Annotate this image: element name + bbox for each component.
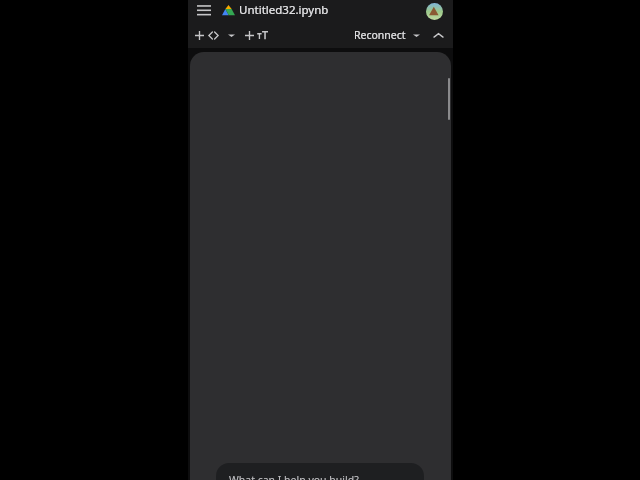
staticText: Reconnect	[354, 28, 406, 42]
button[interactable]: Expand	[430, 27, 446, 43]
button[interactable]: What can I help you build?	[216, 463, 424, 480]
button[interactable]: Add text cell	[243, 27, 270, 44]
button[interactable]: Account	[426, 3, 443, 20]
staticText: Untitled32.ipynb	[239, 2, 329, 18]
button[interactable]: Menu	[194, 1, 214, 21]
staticText: What can I help you build?	[229, 473, 359, 480]
button[interactable]: Add code cell	[193, 27, 221, 44]
button[interactable]: Cell options	[224, 28, 238, 42]
button[interactable]: Reconnect	[351, 25, 423, 45]
